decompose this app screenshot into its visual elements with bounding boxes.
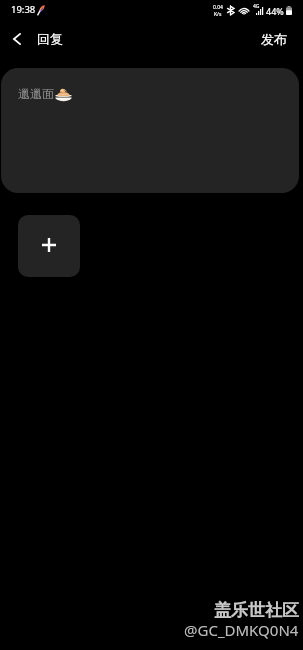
- staticText: 邋邋面: [18, 86, 54, 101]
- staticText: K/s: [214, 11, 222, 18]
- staticText: 发布: [261, 31, 287, 47]
- staticText: 回复: [37, 31, 63, 47]
- staticText: 19:38: [11, 3, 36, 16]
- button[interactable]: 发布: [245, 25, 303, 53]
- staticText: 4G: [253, 3, 260, 10]
- staticText: 0.04: [213, 4, 223, 11]
- staticText: 44%: [266, 5, 284, 17]
- staticText: 盖乐世社区: [214, 600, 299, 621]
- button[interactable]: Add image: [18, 215, 80, 277]
- button[interactable]: 邋邋面: [1, 68, 299, 193]
- staticText: @GC_DMKQ0N4: [184, 620, 299, 640]
- button[interactable]: Back: [0, 22, 34, 56]
